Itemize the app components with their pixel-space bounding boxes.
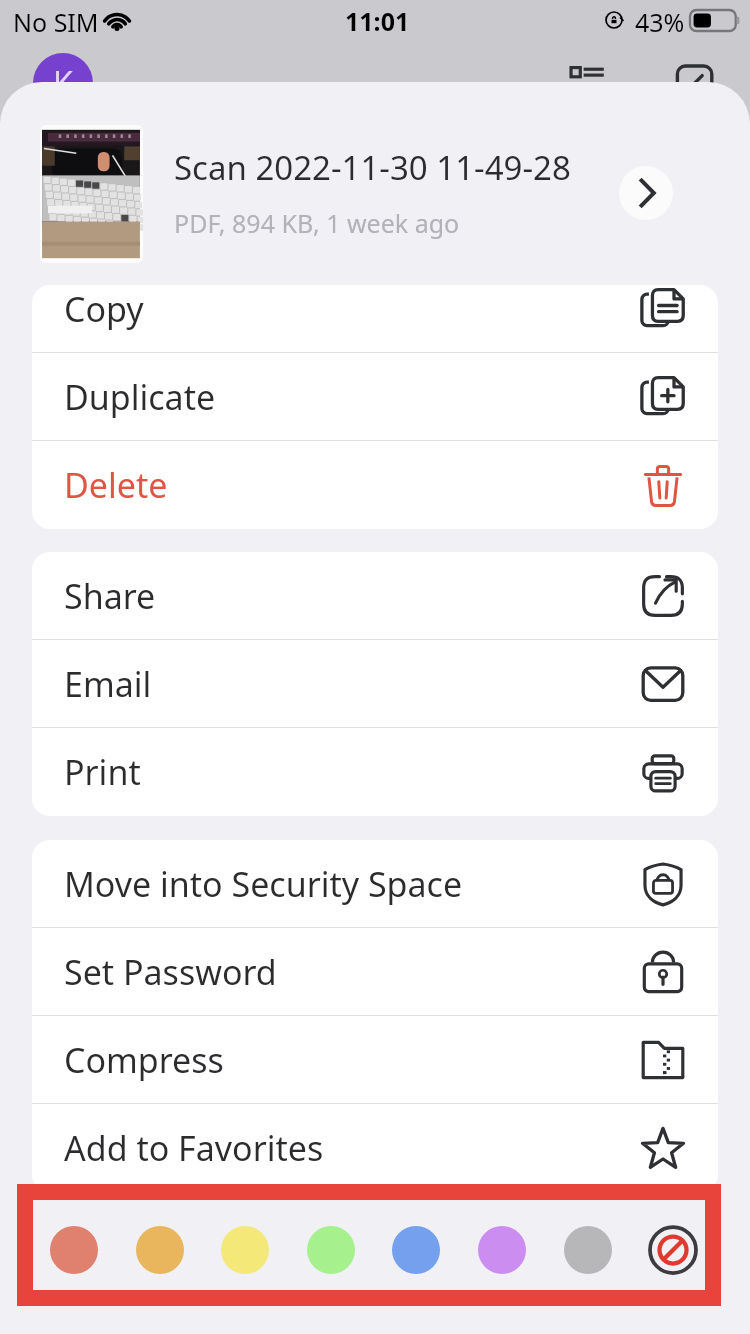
button[interactable]: Colour 3 [221, 1226, 269, 1274]
button[interactable]: Colour 2 [136, 1226, 184, 1274]
staticText: Delete [64, 462, 168, 508]
button[interactable]: Colour 1 [50, 1226, 98, 1274]
button[interactable]: Move into Security Space [32, 840, 718, 928]
staticText: PDF, 894 KB, 1 week ago [174, 206, 460, 240]
button[interactable]: Compress [32, 1016, 718, 1104]
button[interactable]: Colour 5 [392, 1226, 440, 1274]
staticText: Email [64, 661, 152, 707]
button[interactable]: Add to Favorites [32, 1104, 718, 1192]
button[interactable]: Email [32, 640, 718, 728]
button[interactable]: Open details [619, 166, 673, 220]
button[interactable]: Delete [32, 441, 718, 529]
button[interactable]: Copy [32, 285, 718, 353]
staticText: Copy [64, 286, 144, 332]
staticText: 43% [635, 5, 685, 39]
button[interactable]: Select [675, 62, 715, 102]
button[interactable]: Colour 7 [564, 1226, 612, 1274]
staticText: Add to Favorites [64, 1125, 324, 1171]
staticText: Move into Security Space [64, 861, 463, 907]
button[interactable]: Duplicate [32, 353, 718, 441]
button[interactable]: Account [33, 53, 93, 113]
staticText: 11:01 [345, 4, 410, 38]
staticText: Duplicate [64, 374, 216, 420]
button[interactable]: Colour 4 [307, 1226, 355, 1274]
staticText: Print [64, 749, 141, 795]
button[interactable]: Colour 6 [478, 1226, 526, 1274]
button[interactable]: Set Password [32, 928, 718, 1016]
button[interactable]: View mode [566, 60, 608, 102]
staticText: Share [64, 573, 156, 619]
staticText: No SIM [13, 5, 99, 39]
staticText: Compress [64, 1037, 224, 1083]
staticText: K [53, 61, 73, 105]
staticText: Set Password [64, 949, 277, 995]
button[interactable]: Print [32, 728, 718, 816]
button[interactable]: No colour [648, 1225, 698, 1275]
staticText: Scan 2022-11-30 11-49-28 [174, 145, 571, 190]
button[interactable]: Share [32, 552, 718, 640]
